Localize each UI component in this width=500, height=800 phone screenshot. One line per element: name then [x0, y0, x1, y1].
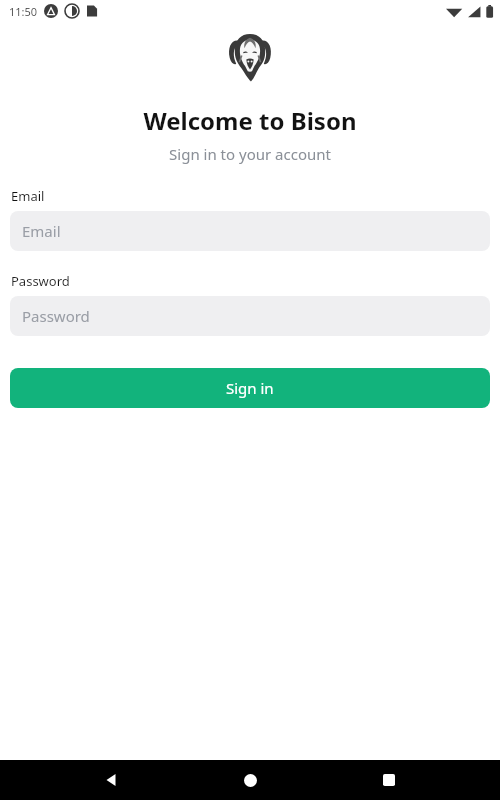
staticText: Sign in to your account: [0, 144, 500, 164]
button[interactable]: Recent apps: [361, 760, 417, 800]
button[interactable]: Back: [83, 760, 139, 800]
other: Bison logo: [227, 31, 273, 83]
staticText: Email: [11, 187, 45, 205]
staticText: 11:50: [9, 4, 38, 19]
staticText: Welcome to Bison: [0, 104, 500, 137]
staticText: Password: [22, 306, 90, 326]
staticText: Password: [11, 272, 70, 290]
button[interactable]: Home: [222, 760, 278, 800]
staticText: Sign in: [226, 378, 274, 398]
button[interactable]: Password: [10, 296, 490, 336]
staticText: Email: [22, 221, 61, 241]
button[interactable]: Email: [10, 211, 490, 251]
button[interactable]: Sign in: [10, 368, 490, 408]
